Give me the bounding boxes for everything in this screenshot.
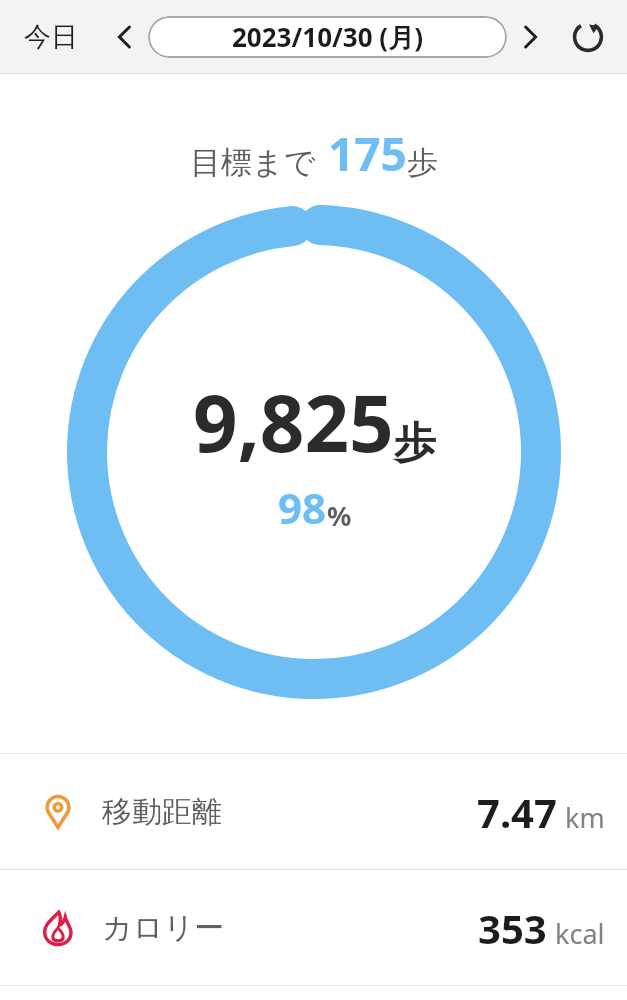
button[interactable]: Previous day: [102, 14, 148, 60]
staticText: カロリー: [102, 909, 225, 947]
staticText: 歩: [394, 417, 436, 470]
button[interactable]: 今日: [18, 14, 84, 60]
staticText: 98: [278, 479, 327, 536]
staticText: 2023/10/30 (月): [232, 19, 423, 55]
staticText: 353: [478, 901, 547, 955]
other: Calories: [40, 910, 76, 946]
staticText: %: [327, 497, 352, 534]
staticText: 9,825: [193, 369, 394, 475]
staticText: 175: [328, 122, 407, 185]
staticText: 目標まで: [190, 143, 316, 182]
staticText: kcal: [555, 915, 605, 952]
button[interactable]: Next day: [507, 14, 553, 60]
staticText: km: [565, 799, 605, 836]
staticText: 7.47: [477, 785, 557, 839]
staticText: 今日: [24, 20, 78, 54]
button[interactable]: Refresh: [563, 12, 613, 62]
staticText: 歩: [407, 143, 438, 182]
button[interactable]: Distance: [0, 754, 627, 869]
other: Distance: [40, 794, 76, 830]
staticText: 移動距離: [102, 793, 222, 831]
button[interactable]: 2023/10/30 (月): [148, 16, 507, 58]
button[interactable]: Calories: [0, 870, 627, 985]
